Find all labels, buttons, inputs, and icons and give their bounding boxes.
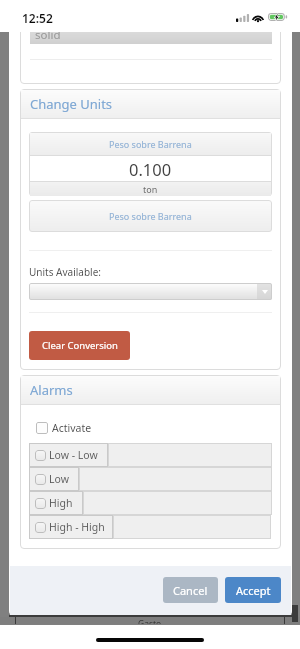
button[interactable]: High — [29, 491, 272, 515]
staticText: Cancel — [173, 583, 208, 598]
staticText: solid — [35, 27, 61, 43]
staticText: Peso sobre Barrena — [109, 138, 192, 150]
button[interactable]: Low - Low — [29, 443, 272, 467]
staticText: Low - Low — [49, 448, 98, 462]
staticText: Clear Conversion — [42, 339, 118, 352]
button[interactable]: Units available dropdown — [29, 283, 272, 300]
button[interactable]: Cancel — [163, 577, 218, 603]
staticText: Peso sobre Barrena — [109, 210, 192, 222]
staticText: 0.100 — [129, 158, 172, 180]
button[interactable]: Clear Conversion — [29, 331, 130, 360]
staticText: 12:52 — [22, 10, 53, 26]
staticText: Activate — [52, 421, 92, 435]
staticText: High - High — [49, 520, 105, 534]
button[interactable]: High - High — [29, 515, 272, 539]
staticText: Units Available: — [29, 265, 101, 279]
button[interactable]: Low — [29, 467, 272, 491]
staticText: Low — [49, 472, 69, 486]
button[interactable]: Accept — [225, 577, 281, 603]
staticText: Gasto — [138, 618, 162, 624]
staticText: Change Units — [30, 95, 113, 113]
staticText: ton — [143, 183, 158, 195]
staticText: High — [49, 496, 73, 510]
staticText: Accept — [236, 583, 271, 598]
button[interactable]: Activate — [36, 421, 92, 435]
button[interactable]: Peso sobre Barrena — [29, 200, 272, 232]
staticText: Alarms — [30, 381, 73, 399]
